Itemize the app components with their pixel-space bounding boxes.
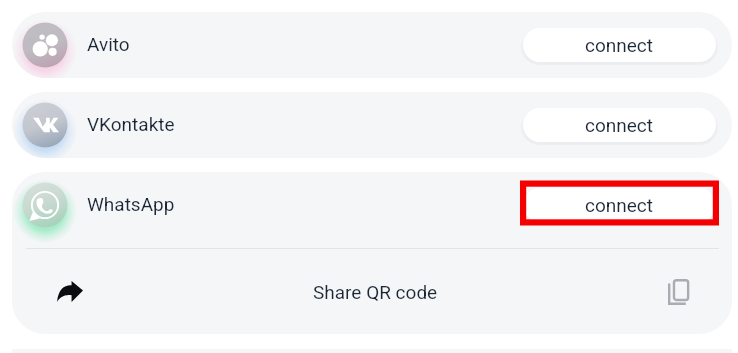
button[interactable]: WhatsApp [12,172,732,238]
button[interactable]: connect [523,28,716,62]
other: Copy [668,279,691,305]
staticText: connect [585,114,654,136]
button[interactable]: Share [12,249,732,334]
staticText: Avito [87,33,130,55]
button[interactable]: connect [523,188,716,222]
staticText: WhatsApp [87,193,175,215]
button[interactable]: Avito [12,12,732,78]
other: Share [57,281,83,302]
button[interactable]: connect [523,108,716,142]
button[interactable]: VKontakte [12,92,732,158]
staticText: Share QR code [313,281,438,303]
staticText: VKontakte [87,113,175,135]
staticText: connect [585,194,654,216]
staticText: connect [585,34,654,56]
